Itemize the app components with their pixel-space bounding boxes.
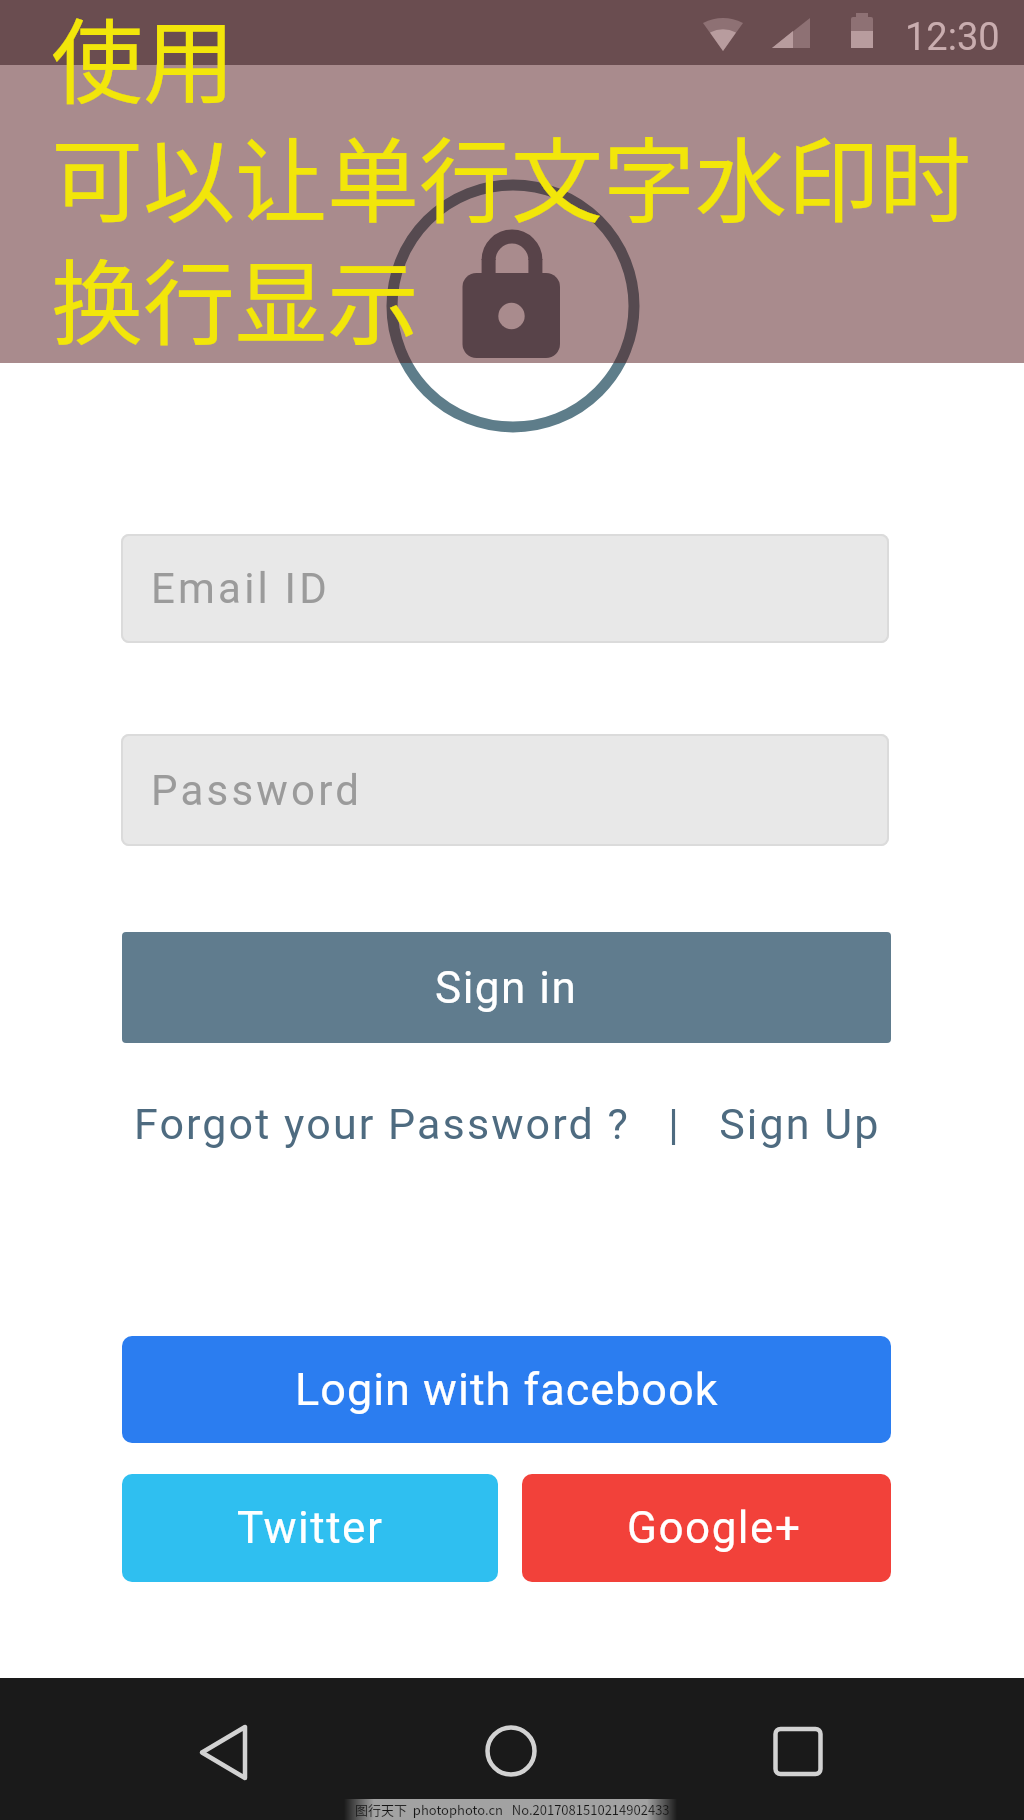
button[interactable]: Twitter <box>122 1474 498 1582</box>
button[interactable]: Google+ <box>522 1474 891 1582</box>
button[interactable]: Email ID <box>121 534 889 643</box>
button[interactable] <box>160 1700 300 1810</box>
staticText: Password <box>151 766 363 815</box>
staticText: 图行天下 photophoto.cn No.201708151021490243… <box>355 1800 670 1819</box>
staticText: Twitter <box>237 1502 384 1554</box>
staticText: Forgot your Password ? | Sign Up <box>134 1099 881 1149</box>
button[interactable]: Sign in <box>122 932 891 1043</box>
staticText: 换行显示 <box>51 230 420 363</box>
button[interactable]: Forgot your Password ? | Sign Up <box>0 1092 1024 1156</box>
staticText: 12:30 <box>905 15 1000 60</box>
button[interactable] <box>721 1700 861 1810</box>
staticText: Sign in <box>435 962 578 1014</box>
staticText: 可以让单行文字水印时 <box>51 108 972 241</box>
button[interactable] <box>441 1700 581 1810</box>
staticText: Google+ <box>627 1502 802 1554</box>
button[interactable]: Login with facebook <box>122 1336 891 1443</box>
button[interactable]: Password <box>121 734 889 846</box>
staticText: Email ID <box>151 564 330 613</box>
staticText: Login with facebook <box>295 1363 719 1416</box>
staticText: 使用 <box>51 0 236 122</box>
